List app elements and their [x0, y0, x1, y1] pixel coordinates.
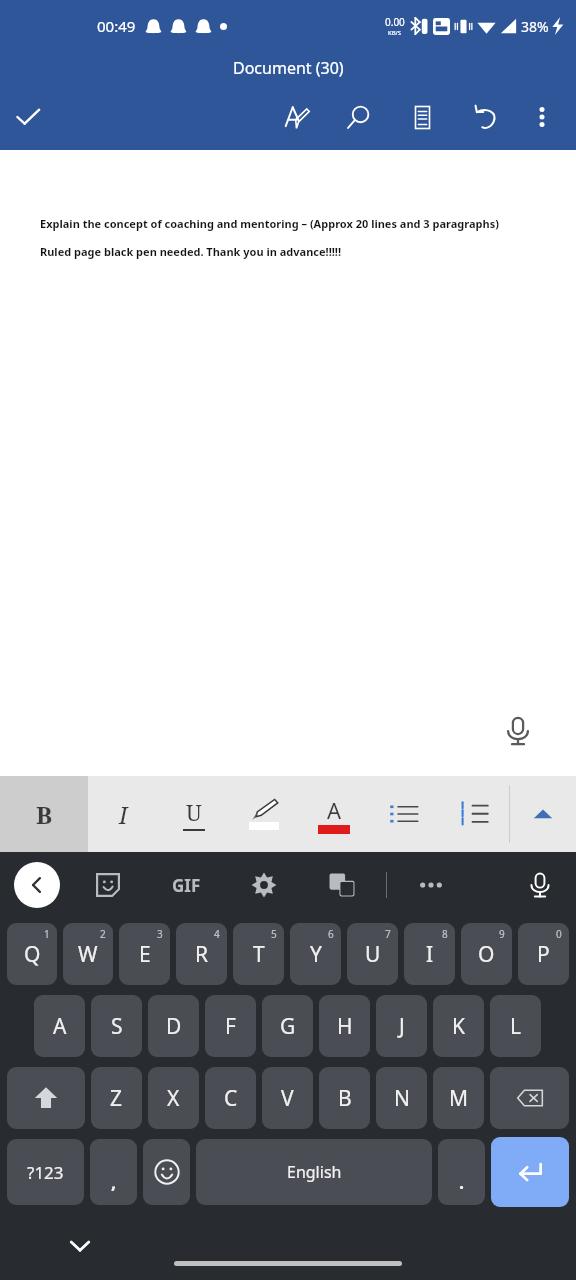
staticText: H [337, 1012, 353, 1041]
button[interactable]: K [433, 995, 484, 1057]
button[interactable]: Y [290, 923, 341, 985]
button[interactable]: L [490, 995, 541, 1057]
staticText: U [186, 797, 202, 827]
staticText: 7 [385, 927, 391, 941]
button[interactable]: Collapse toolbar [510, 776, 576, 852]
button[interactable]: C [205, 1067, 256, 1129]
staticText: 00:49 [97, 16, 136, 36]
button[interactable]: Outline [394, 89, 450, 145]
staticText: A [327, 795, 342, 825]
staticText: C [224, 1084, 238, 1113]
staticText: D [166, 1012, 182, 1041]
button[interactable]: More options [516, 91, 568, 143]
staticText: 0.00 [385, 15, 405, 29]
button[interactable]: Done [0, 89, 56, 145]
button[interactable]: Underline [159, 776, 229, 852]
button[interactable]: R [176, 923, 227, 985]
button[interactable]: W [63, 923, 113, 985]
staticText: 6 [328, 927, 334, 941]
button[interactable]: F [205, 995, 256, 1057]
button[interactable]: Shift [7, 1067, 85, 1129]
button[interactable]: Bold [0, 776, 88, 852]
staticText: P [537, 940, 550, 969]
staticText: 2 [100, 927, 106, 941]
button[interactable]: E [119, 923, 170, 985]
button[interactable]: B [319, 1067, 370, 1129]
button[interactable]: Dictate [485, 698, 551, 764]
button[interactable]: Z [91, 1067, 142, 1129]
staticText: O [478, 940, 495, 969]
staticText: V [281, 1084, 294, 1113]
button[interactable]: Bulleted list [369, 776, 439, 852]
button[interactable]: Hide keyboard [60, 1226, 100, 1266]
button[interactable]: Emoji [143, 1139, 190, 1205]
staticText: , [111, 1170, 117, 1195]
staticText: 38% [521, 17, 549, 36]
staticText: English [287, 1161, 342, 1183]
button[interactable]: Comma [90, 1139, 137, 1205]
button[interactable]: I [404, 923, 455, 985]
staticText: U [365, 940, 381, 969]
staticText: K [452, 1012, 465, 1041]
staticText: X [167, 1084, 180, 1113]
button[interactable]: X [148, 1067, 199, 1129]
button[interactable]: Symbols [7, 1139, 84, 1205]
button[interactable]: U [347, 923, 398, 985]
button[interactable]: Search [331, 89, 387, 145]
staticText: 5 [271, 927, 277, 941]
button[interactable]: Translate [320, 863, 364, 907]
button[interactable]: J [376, 995, 427, 1057]
button[interactable]: Backspace [490, 1067, 569, 1129]
button[interactable]: Highlight [229, 776, 299, 852]
button[interactable]: D [148, 995, 199, 1057]
staticText: GIF [172, 874, 201, 897]
button[interactable]: H [319, 995, 370, 1057]
button[interactable]: Back [14, 862, 60, 908]
staticText: G [280, 1012, 296, 1041]
button[interactable]: Period [438, 1139, 485, 1205]
button[interactable]: Q [7, 923, 57, 985]
staticText: S [111, 1012, 123, 1041]
button[interactable]: Space, English [196, 1139, 432, 1205]
staticText: I [426, 940, 434, 969]
button[interactable]: O [461, 923, 512, 985]
staticText: Z [110, 1084, 123, 1113]
staticText: T [253, 940, 265, 969]
staticText: F [225, 1012, 236, 1041]
button[interactable]: M [433, 1067, 484, 1129]
staticText: Document (30) [233, 57, 344, 79]
button[interactable]: Font colour [299, 776, 369, 852]
button[interactable]: Stickers [86, 863, 130, 907]
button[interactable]: Enter [491, 1137, 569, 1207]
button[interactable]: Numbered list [448, 788, 500, 840]
staticText: Y [310, 940, 322, 969]
staticText: 1 [44, 927, 50, 941]
staticText: L [510, 1012, 522, 1041]
button[interactable]: GIF [164, 863, 208, 907]
staticText: 9 [499, 927, 505, 941]
staticText: B [36, 798, 53, 831]
button[interactable]: A [34, 995, 85, 1057]
button[interactable]: G [262, 995, 313, 1057]
button[interactable]: Undo [457, 89, 513, 145]
staticText: E [139, 940, 151, 969]
button[interactable]: V [262, 1067, 313, 1129]
button[interactable]: Italic [88, 776, 159, 852]
staticText: M [449, 1084, 469, 1113]
staticText: A [53, 1012, 67, 1041]
staticText: Ruled page black pen needed. Thank you i… [40, 244, 342, 259]
button[interactable]: S [91, 995, 142, 1057]
button[interactable]: Settings [242, 863, 286, 907]
staticText: . [459, 1170, 465, 1195]
button[interactable]: N [376, 1067, 427, 1129]
button[interactable]: Voice input [518, 863, 562, 907]
staticText: I [119, 799, 128, 830]
button[interactable]: P [518, 923, 569, 985]
button[interactable]: More [409, 863, 453, 907]
staticText: W [78, 940, 98, 969]
button[interactable]: Edit text [268, 89, 324, 145]
staticText: 0 [556, 927, 562, 941]
staticText: 3 [157, 927, 163, 941]
button[interactable]: T [233, 923, 284, 985]
staticText: KB/S [388, 29, 402, 37]
